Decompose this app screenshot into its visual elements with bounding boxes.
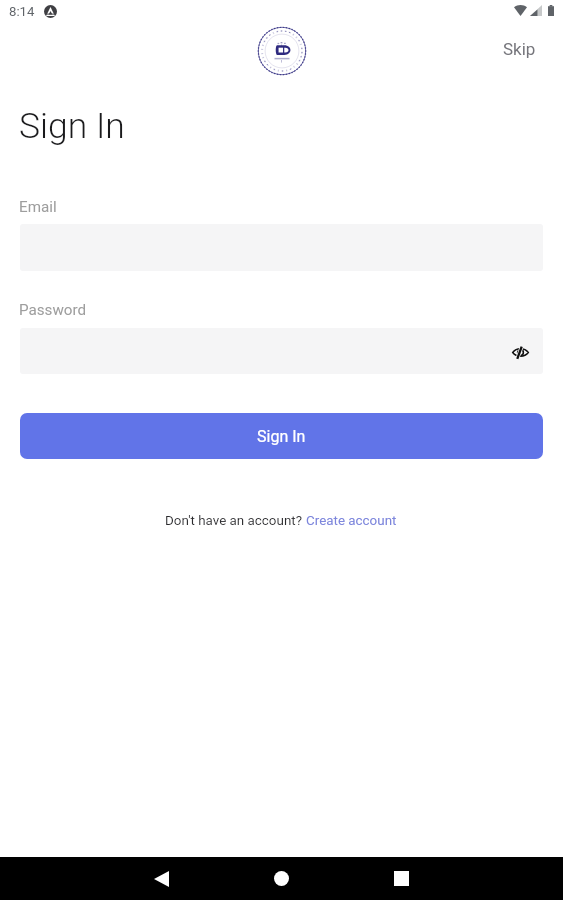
button[interactable]: Back xyxy=(140,857,184,900)
button[interactable]: Recents xyxy=(379,857,423,900)
staticText: Skip xyxy=(503,39,536,59)
staticText: 8:14 xyxy=(9,4,35,19)
button[interactable]: Sign In xyxy=(20,413,543,459)
staticText: Sign In xyxy=(257,427,306,446)
button[interactable]: Create account xyxy=(306,513,397,529)
staticText: Sign In xyxy=(19,105,125,147)
button[interactable]: Show password xyxy=(503,335,537,369)
button[interactable]: Show password xyxy=(20,328,543,374)
staticText: Don't have an account? xyxy=(165,513,306,529)
staticText: Create account xyxy=(306,513,397,529)
button[interactable]: Home xyxy=(259,857,303,900)
button[interactable]: Skip xyxy=(487,29,552,69)
staticText: Email xyxy=(19,198,57,216)
staticText: Password xyxy=(19,301,87,319)
